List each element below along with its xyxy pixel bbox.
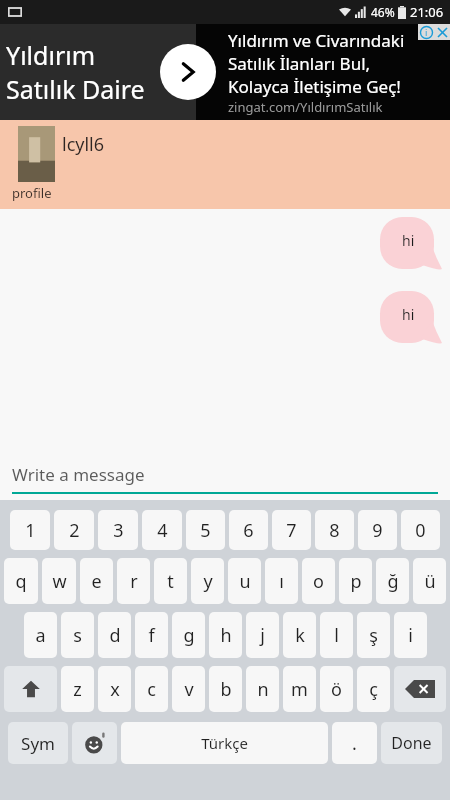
staticText: u bbox=[239, 569, 251, 594]
button[interactable]: l bbox=[320, 612, 353, 658]
staticText: hi bbox=[402, 231, 415, 250]
button[interactable]: y bbox=[191, 558, 224, 604]
button[interactable]: a bbox=[24, 612, 57, 658]
button[interactable]: ı bbox=[265, 558, 298, 604]
button[interactable]: s bbox=[61, 612, 94, 658]
staticText: 4 bbox=[157, 518, 168, 543]
button[interactable]: Türkçe bbox=[121, 722, 328, 764]
staticText: e bbox=[91, 569, 102, 594]
staticText: Write a message bbox=[12, 463, 145, 486]
button[interactable]: . bbox=[332, 722, 377, 764]
staticText: Sym bbox=[21, 732, 55, 755]
button[interactable]: 9 bbox=[358, 510, 397, 550]
staticText: z bbox=[73, 677, 82, 702]
button[interactable]: i bbox=[394, 612, 427, 658]
button[interactable]: w bbox=[42, 558, 76, 604]
button[interactable]: m bbox=[283, 666, 316, 712]
staticText: s bbox=[73, 623, 82, 648]
staticText: ğ bbox=[387, 569, 399, 594]
staticText: 0 bbox=[415, 518, 426, 543]
button[interactable]: x bbox=[98, 666, 131, 712]
button[interactable]: g bbox=[172, 612, 205, 658]
button[interactable]: Sym bbox=[8, 722, 68, 764]
staticText: zingat.com/YıldırımSatılık bbox=[228, 98, 383, 116]
button[interactable]: Shift bbox=[4, 666, 57, 712]
button[interactable]: Yıldırım bbox=[0, 24, 450, 120]
staticText: y bbox=[203, 569, 213, 594]
staticText: Done bbox=[391, 732, 432, 754]
button[interactable]: n bbox=[246, 666, 279, 712]
button[interactable]: Ad info bbox=[418, 24, 434, 40]
staticText: Satılık İlanları Bul, bbox=[228, 52, 371, 75]
button[interactable]: ğ bbox=[376, 558, 409, 604]
button[interactable]: e bbox=[80, 558, 113, 604]
staticText: k bbox=[295, 623, 305, 648]
button[interactable]: u bbox=[228, 558, 261, 604]
button[interactable]: Profile photo bbox=[18, 126, 55, 182]
button[interactable]: d bbox=[98, 612, 131, 658]
button[interactable]: o bbox=[302, 558, 335, 604]
button[interactable]: z bbox=[61, 666, 94, 712]
button[interactable]: h bbox=[209, 612, 242, 658]
staticText: 1 bbox=[25, 518, 36, 543]
staticText: j bbox=[260, 623, 265, 648]
button[interactable]: 1 bbox=[10, 510, 50, 550]
button[interactable]: 2 bbox=[54, 510, 94, 550]
staticText: profile bbox=[12, 184, 52, 202]
staticText: Yıldırım bbox=[6, 38, 96, 72]
staticText: i bbox=[425, 26, 428, 38]
button[interactable]: 3 bbox=[98, 510, 138, 550]
button[interactable]: t bbox=[154, 558, 187, 604]
button[interactable]: 7 bbox=[272, 510, 311, 550]
button[interactable]: p bbox=[339, 558, 372, 604]
staticText: 2 bbox=[69, 518, 80, 543]
button[interactable]: ö bbox=[320, 666, 353, 712]
button[interactable]: Backspace bbox=[394, 666, 446, 712]
staticText: ç bbox=[369, 677, 378, 702]
staticText: Yıldırım ve Civarındaki bbox=[228, 29, 405, 52]
staticText: b bbox=[220, 677, 232, 702]
button[interactable]: Close ad bbox=[434, 24, 450, 40]
staticText: r bbox=[130, 569, 138, 594]
button[interactable]: 5 bbox=[186, 510, 225, 550]
staticText: 46% bbox=[371, 4, 395, 20]
staticText: t bbox=[167, 569, 174, 594]
button[interactable]: v bbox=[172, 666, 205, 712]
button[interactable]: Done bbox=[381, 722, 442, 764]
button[interactable]: k bbox=[283, 612, 316, 658]
staticText: m bbox=[291, 677, 308, 702]
button[interactable]: 4 bbox=[142, 510, 182, 550]
staticText: 3 bbox=[113, 518, 124, 543]
staticText: Türkçe bbox=[201, 733, 248, 753]
staticText: f bbox=[148, 623, 155, 648]
staticText: 6 bbox=[243, 518, 254, 543]
button[interactable]: f bbox=[135, 612, 168, 658]
staticText: 7 bbox=[286, 518, 297, 543]
staticText: . bbox=[352, 731, 357, 756]
staticText: l bbox=[334, 623, 339, 648]
staticText: q bbox=[15, 569, 27, 594]
staticText: v bbox=[184, 677, 194, 702]
staticText: n bbox=[257, 677, 269, 702]
staticText: p bbox=[350, 569, 362, 594]
staticText: Satılık Daire bbox=[6, 72, 145, 106]
button[interactable]: r bbox=[117, 558, 150, 604]
button[interactable]: 0 bbox=[401, 510, 440, 550]
button[interactable]: Emoji and voice input bbox=[72, 722, 117, 764]
staticText: lcyll6 bbox=[62, 132, 105, 157]
button[interactable]: 6 bbox=[229, 510, 268, 550]
button[interactable]: c bbox=[135, 666, 168, 712]
staticText: ö bbox=[331, 677, 342, 702]
button[interactable]: ş bbox=[357, 612, 390, 658]
button[interactable]: ç bbox=[357, 666, 390, 712]
staticText: 5 bbox=[200, 518, 211, 543]
staticText: 9 bbox=[372, 518, 383, 543]
button[interactable]: 8 bbox=[315, 510, 354, 550]
button[interactable]: ü bbox=[413, 558, 446, 604]
button[interactable]: b bbox=[209, 666, 242, 712]
button[interactable]: q bbox=[4, 558, 38, 604]
staticText: a bbox=[35, 623, 46, 648]
button[interactable]: j bbox=[246, 612, 279, 658]
button[interactable]: Write a message bbox=[12, 463, 438, 494]
staticText: Kolayca İletişime Geç! bbox=[228, 75, 401, 98]
